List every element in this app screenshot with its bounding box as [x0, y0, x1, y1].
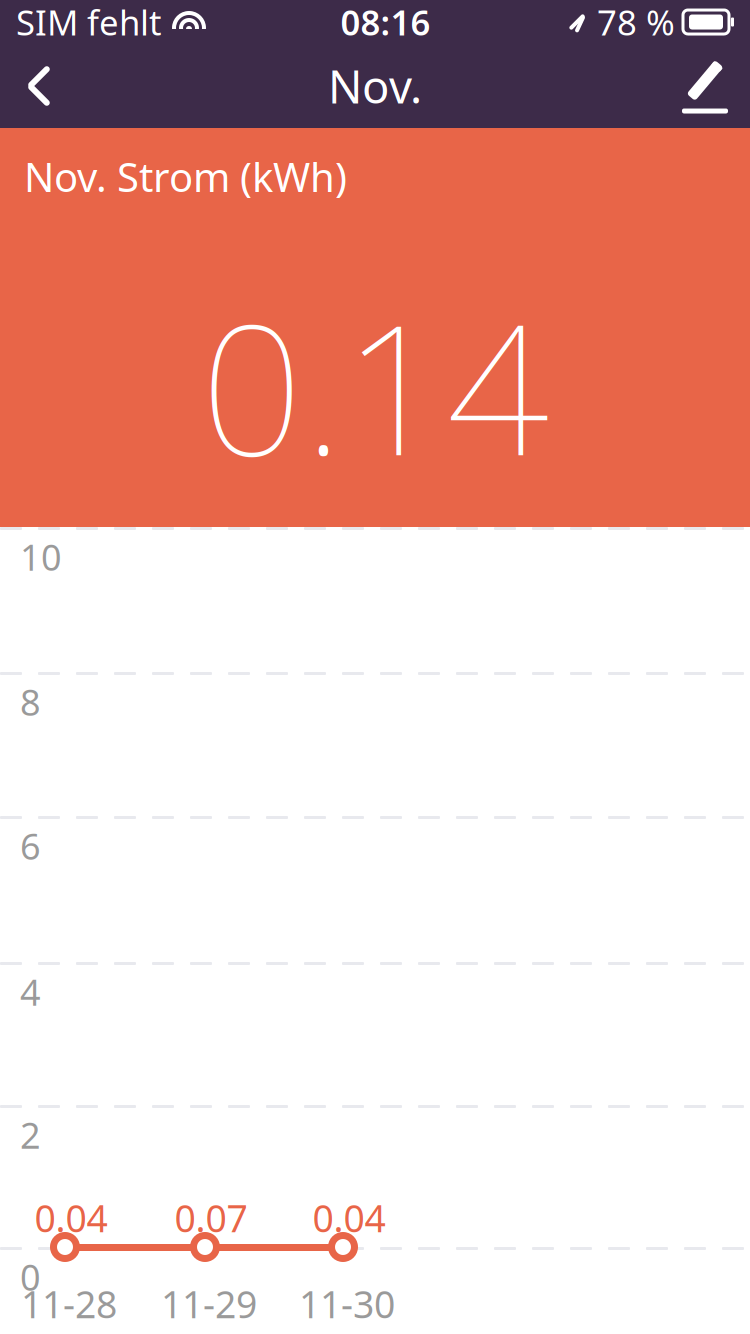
button[interactable]: Back [0, 46, 78, 126]
staticText: 0.07 [174, 1193, 247, 1243]
staticText: 0.04 [312, 1193, 385, 1243]
staticText: 78 % [597, 0, 675, 45]
staticText: 10 [20, 533, 62, 581]
staticText: 11-28 [21, 1279, 117, 1329]
staticText: 4 [20, 968, 41, 1016]
staticText: 2 [20, 1111, 41, 1159]
staticText: 6 [20, 822, 41, 870]
button[interactable]: Edit [660, 46, 750, 126]
staticText: 8 [20, 678, 41, 726]
staticText: 08:16 [340, 0, 430, 45]
staticText: 11-29 [161, 1279, 257, 1329]
staticText: 11-30 [299, 1279, 395, 1329]
staticText: 0 [20, 1253, 41, 1301]
staticText: SIM fehlt [16, 0, 162, 45]
staticText: Nov. Strom (kWh) [24, 150, 347, 203]
staticText: Nov. [328, 56, 422, 116]
staticText: 0.14 [200, 266, 549, 505]
staticText: 0.04 [34, 1193, 107, 1243]
